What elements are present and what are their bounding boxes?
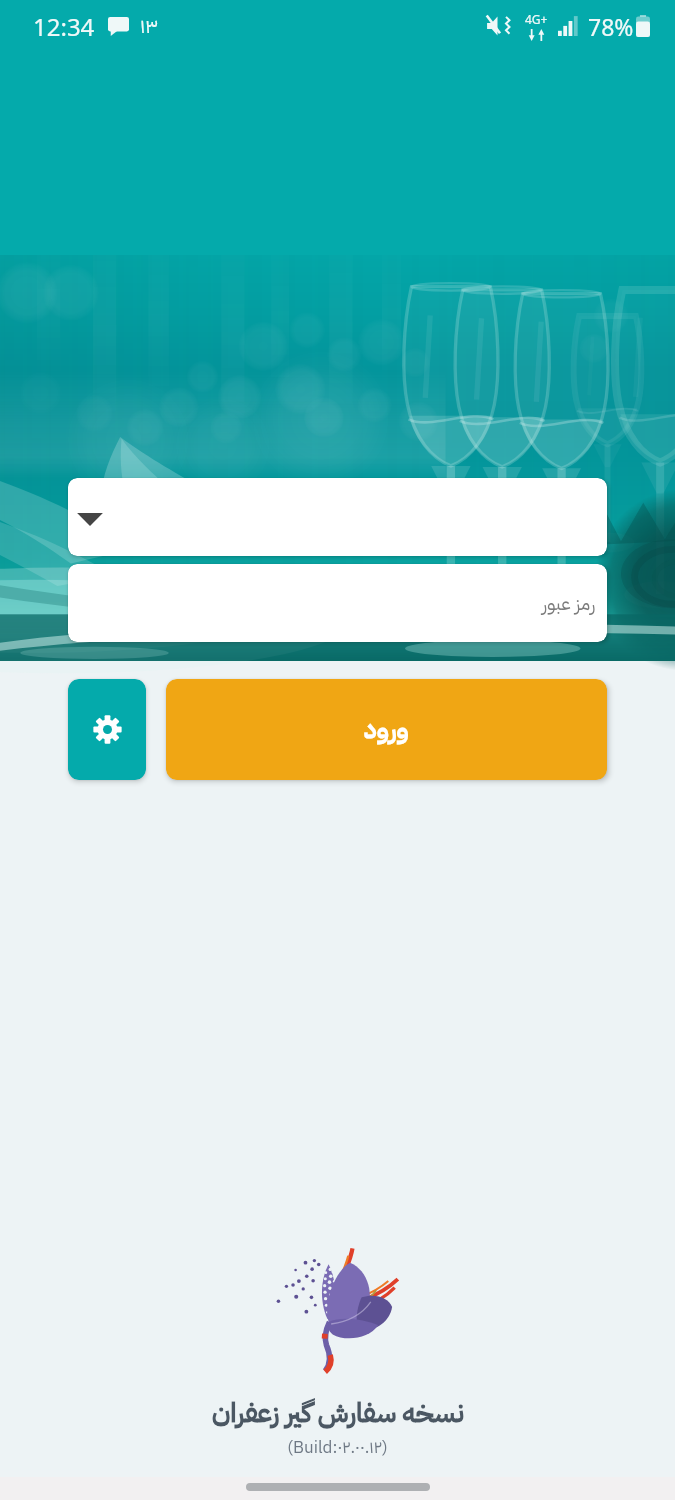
button[interactable]: انتخاب کاربر [68, 478, 607, 556]
staticText: 12:34 [33, 10, 95, 43]
staticText: ورود [364, 710, 409, 749]
staticText: (Build:۰۲.۰۰.۱۲) [287, 1435, 388, 1460]
button[interactable]: Settings [68, 679, 146, 780]
button[interactable]: ورود [166, 679, 607, 780]
staticText: نسخه سفارش گیر زعفران [212, 1393, 464, 1434]
button[interactable]: رمز عبور [68, 564, 607, 642]
staticText: رمز عبور [542, 589, 596, 618]
staticText: 4G+ [525, 11, 548, 27]
staticText: ۱۳ [140, 11, 158, 41]
staticText: 78% [588, 11, 634, 42]
